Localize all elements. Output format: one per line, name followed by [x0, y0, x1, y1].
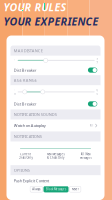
staticText: 1: [14, 59, 16, 62]
staticText: Messages: [79, 156, 91, 159]
staticText: Never: [72, 187, 79, 191]
staticText: NOTIFICATION SOUNDS: [14, 112, 57, 117]
button[interactable]: New Messages: [40, 152, 70, 160]
staticText: Current: [20, 152, 31, 156]
staticText: YOUR EXPERIENCE: [3, 14, 98, 28]
button[interactable]: Never: [69, 186, 81, 192]
button[interactable]: Current: [10, 152, 40, 160]
staticText: 99: [96, 57, 98, 64]
button[interactable]: Dist Breaker: [10, 65, 100, 75]
staticText: Always: [32, 187, 40, 191]
staticText: Push Explicit Content: [14, 178, 49, 183]
staticText: All: [90, 124, 94, 127]
button[interactable]: Always: [30, 186, 42, 192]
staticText: YOUR RULES: [3, 0, 66, 14]
button[interactable]: All New: [70, 152, 100, 160]
staticText: MAX DISTANCE: [14, 48, 43, 53]
staticText: Dist Breaker: [14, 67, 37, 73]
staticText: New Messages: [46, 152, 64, 156]
staticText: OPTIONS: [14, 168, 30, 173]
staticText: Block Messages: [46, 187, 66, 191]
staticText: Chats Only: [18, 156, 32, 159]
staticText: Dist Breaker: [14, 101, 37, 106]
staticText: All New: [80, 152, 90, 156]
staticText: Watch on Autoplay: [14, 123, 46, 128]
staticText: AGE RANGE: [14, 78, 37, 83]
staticText: 18: [14, 88, 16, 95]
staticText: 60: [96, 88, 98, 95]
button[interactable]: Dist Breaker: [10, 98, 100, 109]
staticText: NOTIFICATIONS: [14, 134, 42, 139]
staticText: & Chats Only: [47, 156, 64, 159]
button[interactable]: Block Messages: [44, 186, 68, 192]
button[interactable]: Watch on Autoplay: [10, 120, 100, 131]
